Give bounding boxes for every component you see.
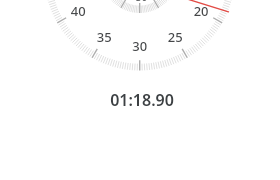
button[interactable]: 01:18.90 [0,0,280,180]
staticText: 01:18.90 [110,89,174,111]
